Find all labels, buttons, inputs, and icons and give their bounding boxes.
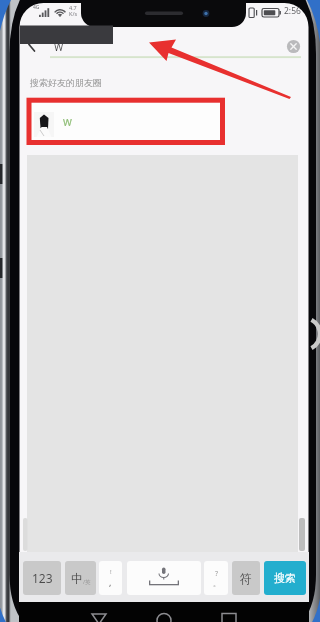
- staticText: 搜索好友的朋友圈: [30, 77, 102, 88]
- staticText: 搜索: [274, 571, 296, 585]
- staticText: ,: [109, 576, 112, 588]
- button[interactable]: Home: [150, 602, 178, 622]
- button[interactable]: Recents: [215, 602, 243, 622]
- staticText: 2:56: [284, 5, 301, 17]
- button[interactable]: Comma: [99, 561, 122, 595]
- button[interactable]: 123: [23, 561, 61, 595]
- staticText: W: [54, 40, 64, 54]
- staticText: ?: [215, 569, 219, 579]
- button[interactable]: Back: [85, 602, 113, 622]
- staticText: /英: [83, 578, 91, 586]
- button[interactable]: Chinese / English: [65, 561, 96, 595]
- button[interactable]: Clear: [285, 38, 302, 55]
- staticText: K/s: [69, 10, 78, 17]
- staticText: 4G: [33, 4, 40, 11]
- button[interactable]: Search: [264, 561, 306, 595]
- staticText: 。: [213, 579, 220, 588]
- staticText: W: [63, 116, 72, 129]
- staticText: !: [110, 568, 112, 576]
- button[interactable]: Question: [204, 561, 228, 595]
- staticText: 4.7: [69, 4, 77, 11]
- button[interactable]: Back: [23, 32, 47, 56]
- button[interactable]: Symbols: [232, 561, 260, 595]
- button[interactable]: W: [28, 103, 223, 144]
- button[interactable]: Space: [127, 561, 201, 595]
- staticText: 符: [240, 571, 252, 586]
- staticText: 中: [71, 571, 83, 586]
- staticText: 123: [32, 570, 53, 586]
